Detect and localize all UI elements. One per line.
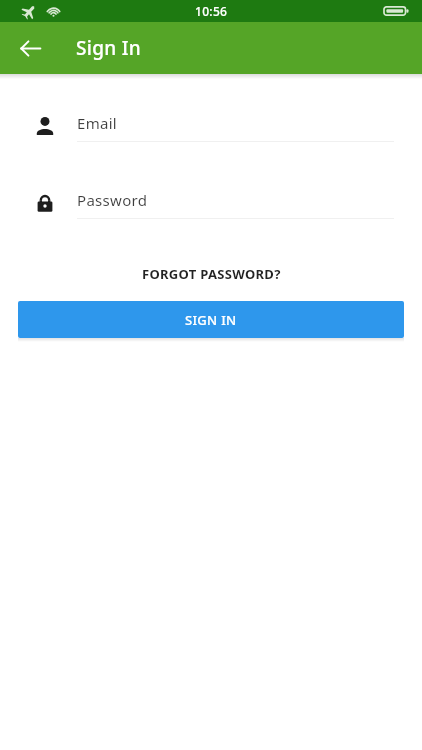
staticText: SIGN IN — [185, 311, 237, 329]
button[interactable]: Back — [6, 24, 54, 72]
staticText: Sign In — [76, 35, 141, 61]
button[interactable]: FORGOT PASSWORD? — [132, 259, 291, 289]
button[interactable]: Password — [0, 190, 422, 219]
staticText: Email — [77, 113, 118, 133]
button[interactable]: SIGN IN — [18, 301, 404, 338]
staticText: 10:56 — [195, 3, 228, 19]
button[interactable]: Email — [0, 113, 422, 142]
staticText: FORGOT PASSWORD? — [142, 265, 281, 283]
staticText: Password — [77, 190, 148, 210]
